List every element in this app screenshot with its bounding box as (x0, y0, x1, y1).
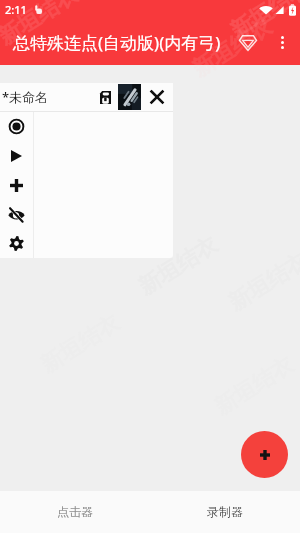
staticText: 总特殊连点(自动版)(内有弓) (13, 31, 221, 54)
button[interactable]: Premium (230, 24, 266, 60)
staticText: 新垣结衣 (225, 0, 300, 45)
staticText: 点击器 (57, 504, 93, 519)
button[interactable]: Close (147, 87, 167, 107)
button[interactable]: Preview (118, 84, 141, 110)
button[interactable]: Play (0, 141, 33, 170)
button[interactable]: 点击器 (0, 491, 150, 533)
button[interactable]: Hide (0, 200, 33, 229)
button[interactable]: Add step (0, 171, 33, 200)
staticText: 2:11 (5, 2, 27, 17)
button[interactable]: Save (95, 87, 115, 107)
button[interactable]: More options (265, 25, 299, 59)
staticText: 录制器 (207, 504, 243, 519)
button[interactable]: Settings (0, 229, 33, 258)
button[interactable]: Add (241, 431, 288, 478)
button[interactable]: Record (0, 112, 33, 141)
staticText: 新垣结衣 (133, 231, 223, 301)
staticText: 新垣结衣 (0, 0, 83, 51)
button[interactable]: 录制器 (150, 491, 300, 533)
staticText: *未命名 (2, 88, 95, 106)
staticText: 新垣结衣 (187, 13, 277, 83)
